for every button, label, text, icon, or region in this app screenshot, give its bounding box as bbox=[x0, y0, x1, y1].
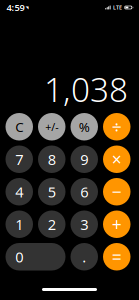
staticText: 4 bbox=[15, 182, 23, 201]
staticText: LTE bbox=[113, 4, 122, 11]
staticText: +/- bbox=[45, 120, 58, 134]
staticText: 7 bbox=[15, 149, 23, 169]
staticText: − bbox=[112, 180, 122, 203]
staticText: . bbox=[82, 247, 86, 266]
button[interactable]: ÷ bbox=[103, 113, 130, 140]
button[interactable]: 7 bbox=[5, 145, 33, 173]
staticText: × bbox=[112, 148, 122, 171]
staticText: 6 bbox=[80, 182, 88, 201]
staticText: 2 bbox=[48, 214, 56, 234]
staticText: 0 bbox=[15, 247, 23, 266]
button[interactable]: 3 bbox=[70, 210, 98, 238]
staticText: % bbox=[79, 118, 90, 136]
button[interactable]: 8 bbox=[38, 145, 65, 173]
button[interactable]: 5 bbox=[38, 178, 65, 205]
button[interactable]: 9 bbox=[70, 145, 98, 173]
button[interactable]: +/- bbox=[38, 113, 65, 140]
button[interactable]: 2 bbox=[38, 210, 65, 238]
staticText: = bbox=[112, 245, 122, 268]
button[interactable]: + bbox=[103, 210, 130, 238]
staticText: + bbox=[112, 213, 122, 236]
button[interactable]: 0 bbox=[5, 243, 65, 270]
staticText: 9 bbox=[80, 149, 88, 169]
staticText: 8 bbox=[48, 149, 56, 169]
button[interactable]: − bbox=[103, 178, 130, 205]
staticText: C bbox=[15, 118, 23, 136]
staticText: ◥ bbox=[25, 5, 28, 10]
staticText: ÷ bbox=[112, 115, 122, 138]
button[interactable]: . bbox=[70, 243, 98, 270]
button[interactable]: 4 bbox=[5, 178, 33, 205]
button[interactable]: C bbox=[5, 113, 33, 140]
button[interactable]: 1 bbox=[5, 210, 33, 238]
button[interactable]: % bbox=[70, 113, 98, 140]
staticText: 3 bbox=[80, 214, 88, 234]
staticText: 1 bbox=[15, 214, 23, 234]
button[interactable]: = bbox=[103, 243, 130, 270]
button[interactable]: × bbox=[103, 145, 130, 173]
button[interactable]: 6 bbox=[70, 178, 98, 205]
staticText: 1,038 bbox=[44, 67, 128, 111]
staticText: 5 bbox=[48, 182, 56, 201]
staticText: 4:59 bbox=[6, 1, 24, 14]
